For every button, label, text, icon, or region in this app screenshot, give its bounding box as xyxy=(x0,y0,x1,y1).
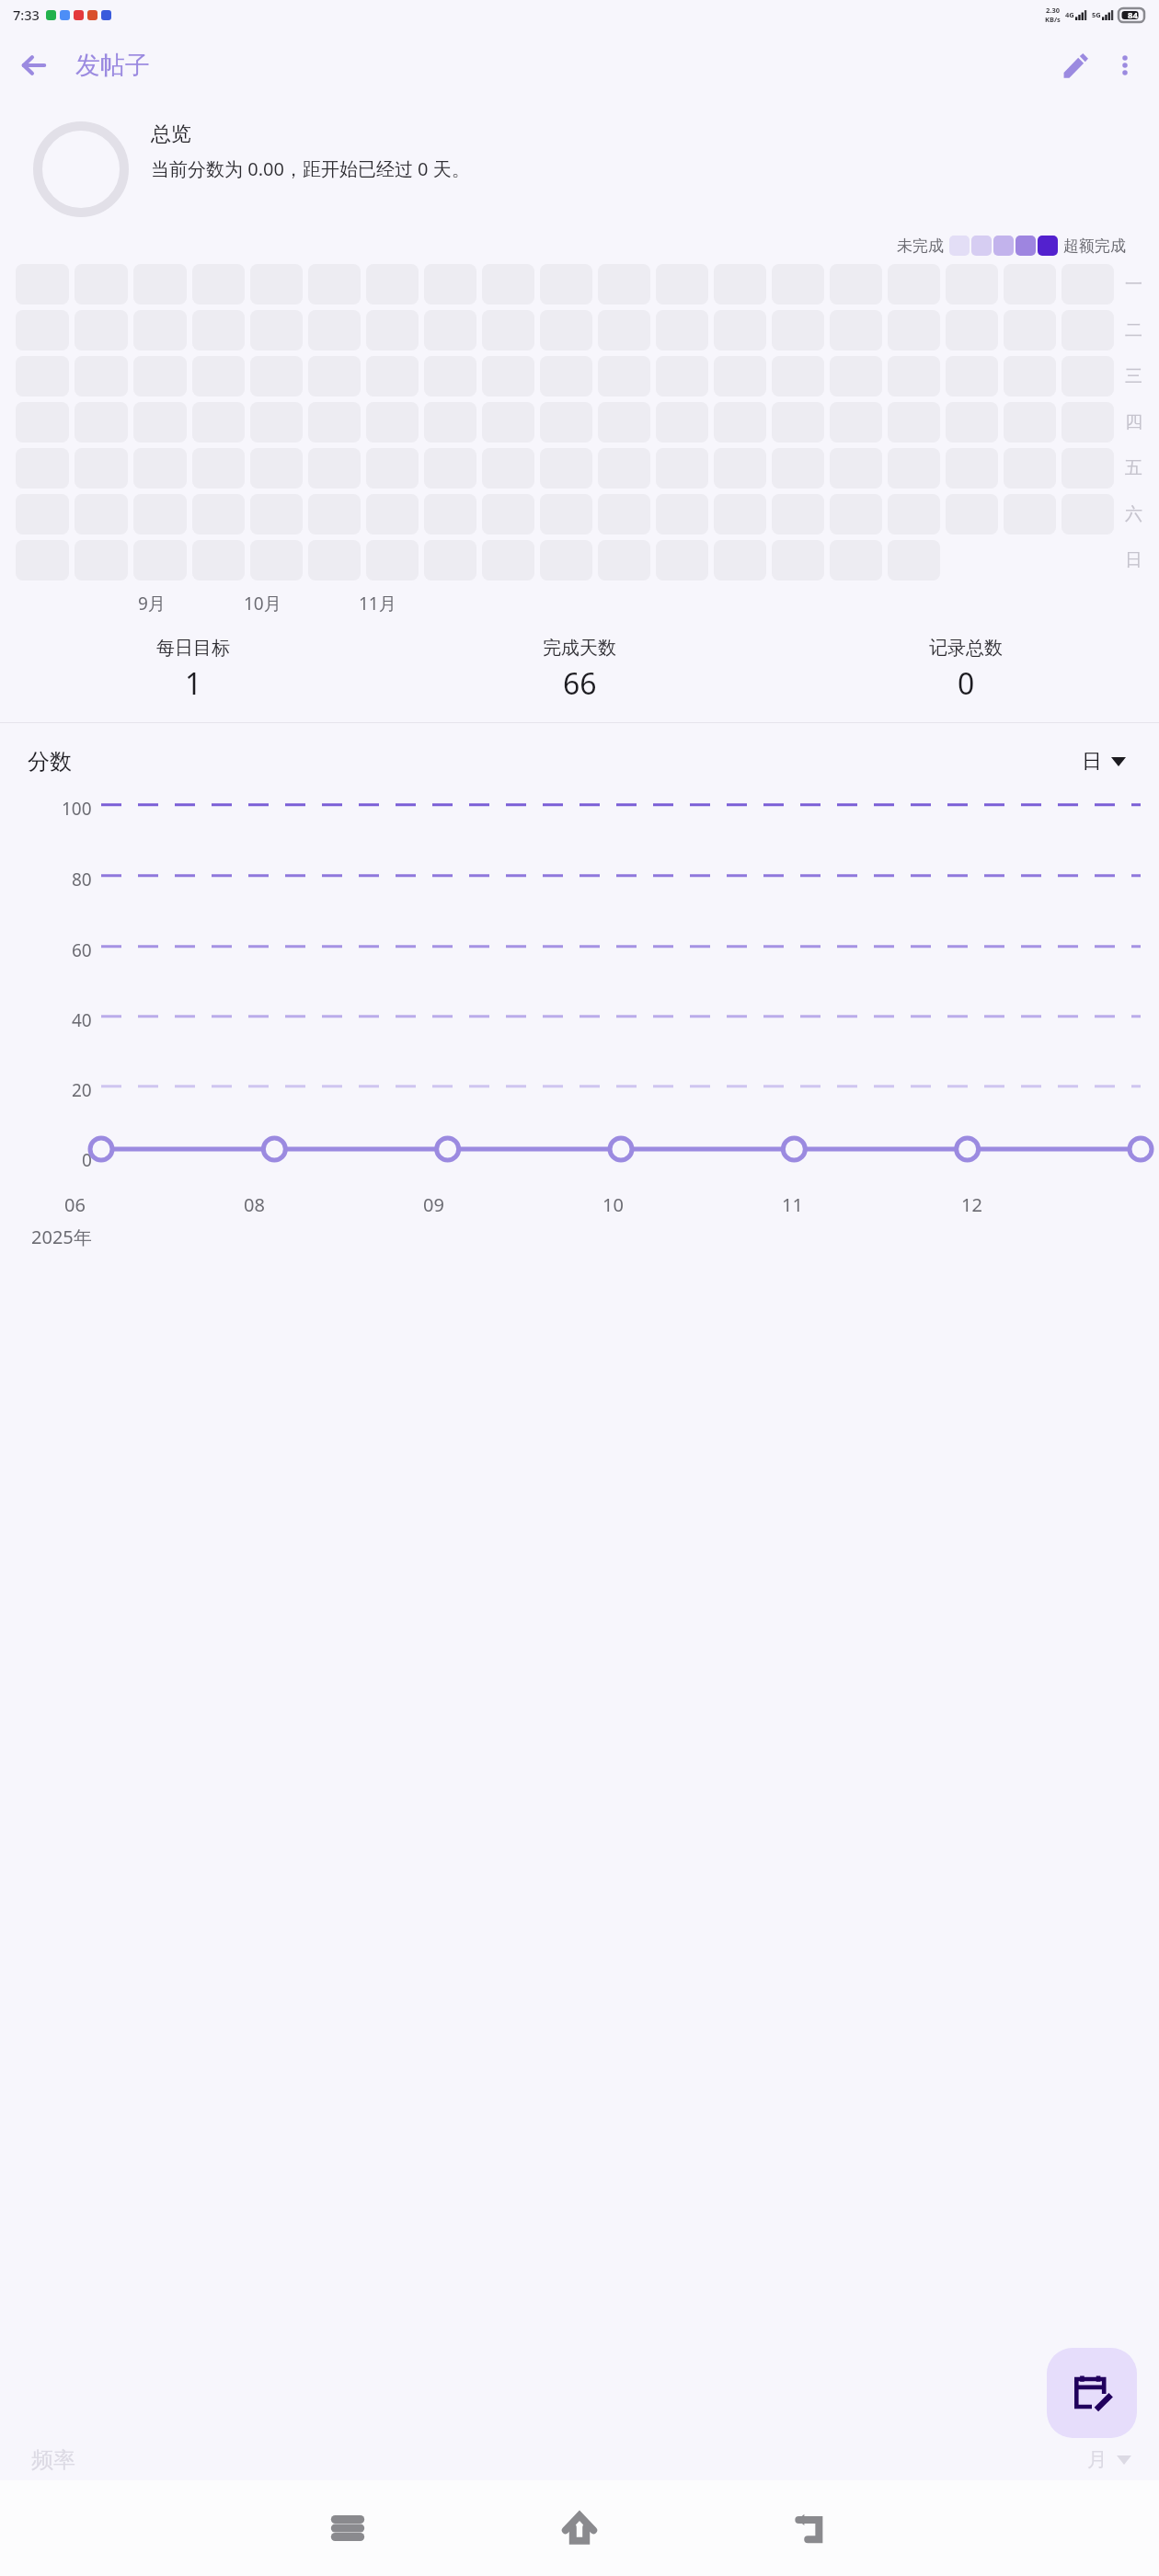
button[interactable]: Back xyxy=(695,2480,927,2576)
button[interactable]: 记录总数 xyxy=(773,637,1159,704)
button[interactable]: 日 xyxy=(1076,743,1131,780)
button[interactable]: Back xyxy=(9,40,59,90)
button[interactable]: Edit xyxy=(1050,40,1100,90)
button[interactable]: More options xyxy=(1100,40,1150,90)
button[interactable]: 完成天数 xyxy=(386,637,773,704)
